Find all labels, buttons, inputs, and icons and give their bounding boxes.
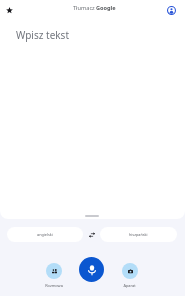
staticText: Google (96, 4, 116, 12)
staticText: Aparat (123, 283, 136, 288)
staticText: Wpisz tekst (16, 28, 70, 42)
staticText: Tłumacz (73, 4, 95, 12)
button[interactable]: angielski (7, 227, 83, 242)
button[interactable]: Account (164, 3, 178, 17)
button[interactable]: Saved (1, 2, 17, 18)
staticText: hiszpański (129, 232, 148, 237)
staticText: Rozmowa (45, 283, 63, 288)
button[interactable]: Camera (109, 263, 150, 288)
button[interactable]: Speak (79, 257, 104, 282)
staticText: angielski (37, 232, 53, 237)
button[interactable]: Conversation (33, 263, 74, 288)
button[interactable]: Swap languages (84, 227, 99, 242)
button[interactable]: hiszpański (100, 227, 177, 242)
